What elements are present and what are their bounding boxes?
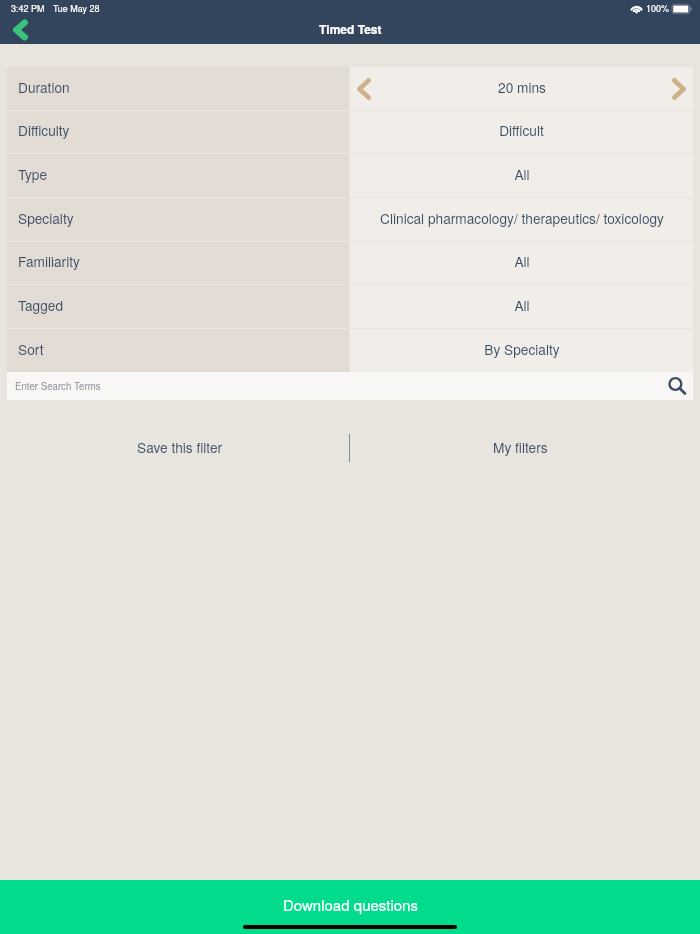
button[interactable]: My filters	[350, 431, 690, 461]
staticText: 100%	[646, 2, 670, 15]
button[interactable]: Search	[667, 376, 687, 396]
staticText: 20 mins	[498, 77, 546, 97]
staticText: Type	[18, 164, 48, 184]
staticText: Difficulty	[18, 120, 70, 140]
button[interactable]: Increase duration	[672, 78, 686, 100]
button[interactable]: By Specialty	[350, 329, 693, 372]
button[interactable]: Back	[6, 15, 34, 43]
staticText: All	[514, 295, 530, 315]
button[interactable]: All	[350, 242, 693, 284]
button[interactable]: Tagged	[7, 285, 349, 328]
button[interactable]: Difficulty	[7, 111, 349, 153]
staticText: By Specialty	[484, 339, 560, 359]
staticText: 3:42 PM	[11, 2, 45, 15]
button[interactable]: Sort	[7, 329, 349, 372]
staticText: All	[514, 164, 530, 184]
staticText: All	[514, 251, 530, 271]
button[interactable]: Clinical pharmacology/ therapeutics/ tox…	[350, 198, 693, 241]
staticText: Clinical pharmacology/ therapeutics/ tox…	[380, 208, 664, 228]
button[interactable]: All	[350, 285, 693, 328]
button[interactable]: Duration	[7, 67, 349, 110]
button[interactable]: Download questions	[0, 880, 700, 934]
button[interactable]: Specialty	[7, 198, 349, 241]
staticText: Timed Test	[319, 20, 382, 37]
staticText: Difficult	[499, 120, 544, 140]
staticText: My filters	[493, 437, 548, 457]
button[interactable]: Familiarity	[7, 242, 349, 284]
button[interactable]: Type	[7, 154, 349, 197]
button[interactable]: All	[350, 154, 693, 197]
staticText: Sort	[18, 339, 44, 359]
staticText: Enter Search Terms	[15, 379, 101, 393]
staticText: Save this filter	[137, 437, 223, 457]
button[interactable]: 20 mins	[350, 67, 693, 110]
button[interactable]: Difficult	[350, 111, 693, 153]
staticText: Duration	[18, 77, 70, 97]
button[interactable]: Enter Search Terms	[7, 372, 693, 400]
staticText: Specialty	[18, 208, 74, 228]
staticText: Familiarity	[18, 251, 80, 271]
staticText: Download questions	[283, 894, 418, 915]
button[interactable]: Save this filter	[10, 431, 349, 461]
button[interactable]: Decrease duration	[357, 78, 371, 100]
staticText: Tagged	[18, 295, 64, 315]
staticText: Tue May 28	[53, 2, 100, 15]
